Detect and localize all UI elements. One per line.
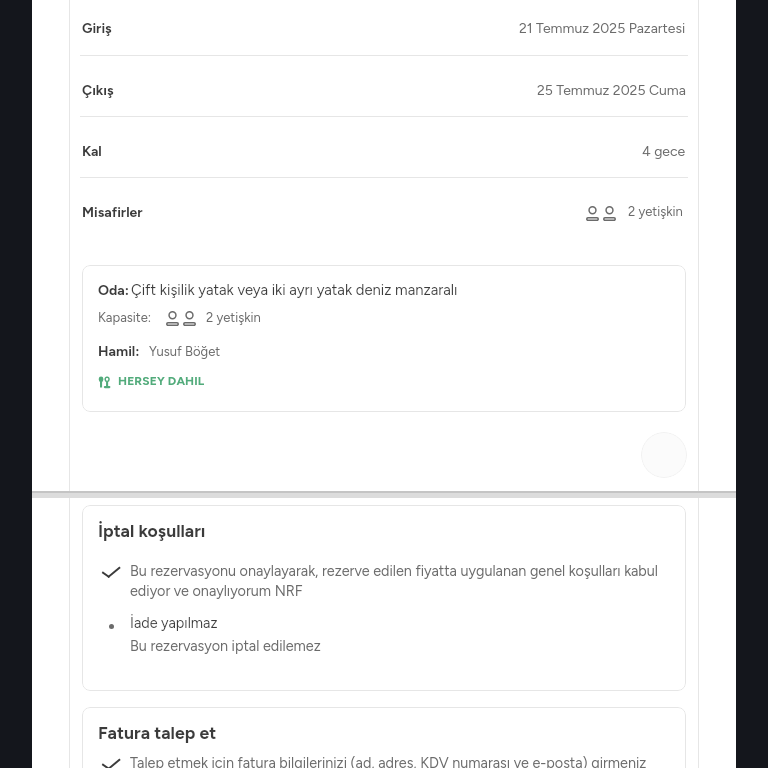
- staticText: 2 yetişkin: [206, 310, 261, 326]
- button[interactable]: İptal koşulları: [82, 505, 686, 691]
- staticText: Giriş: [82, 20, 112, 37]
- staticText: Hamil:: [98, 343, 140, 360]
- staticText: Misafirler: [82, 204, 143, 221]
- button[interactable]: Giriş: [69, 0, 699, 56]
- staticText: Çıkış: [82, 82, 114, 99]
- staticText: Bu rezervasyonu onaylayarak, rezerve edi…: [130, 562, 670, 600]
- staticText: Yusuf Böğet: [149, 344, 221, 360]
- staticText: Bu rezervasyon iptal edilemez: [130, 637, 321, 654]
- staticText: Çift kişilik yatak veya iki ayrı yatak d…: [131, 281, 458, 299]
- staticText: Kapasite:: [98, 310, 152, 326]
- staticText: 2 yetişkin: [628, 204, 683, 220]
- button[interactable]: Çıkış: [69, 56, 699, 117]
- button[interactable]: Kal: [69, 117, 699, 178]
- staticText: 4 gece: [642, 143, 686, 160]
- staticText: İade yapılmaz: [130, 614, 218, 631]
- button[interactable]: Oda:: [82, 265, 686, 412]
- staticText: Talep etmek için fatura bilgilerinizi (a…: [130, 754, 670, 768]
- button[interactable]: Fatura talep et: [82, 707, 686, 768]
- staticText: 21 Temmuz 2025 Pazartesi: [519, 20, 686, 37]
- staticText: İptal koşulları: [98, 520, 206, 541]
- staticText: Oda:: [98, 282, 130, 299]
- staticText: Kal: [82, 143, 102, 160]
- staticText: HERSEY DAHIL: [118, 374, 205, 388]
- staticText: Fatura talep et: [98, 722, 217, 743]
- staticText: 25 Temmuz 2025 Cuma: [537, 82, 686, 99]
- button[interactable]: Misafirler: [69, 178, 699, 239]
